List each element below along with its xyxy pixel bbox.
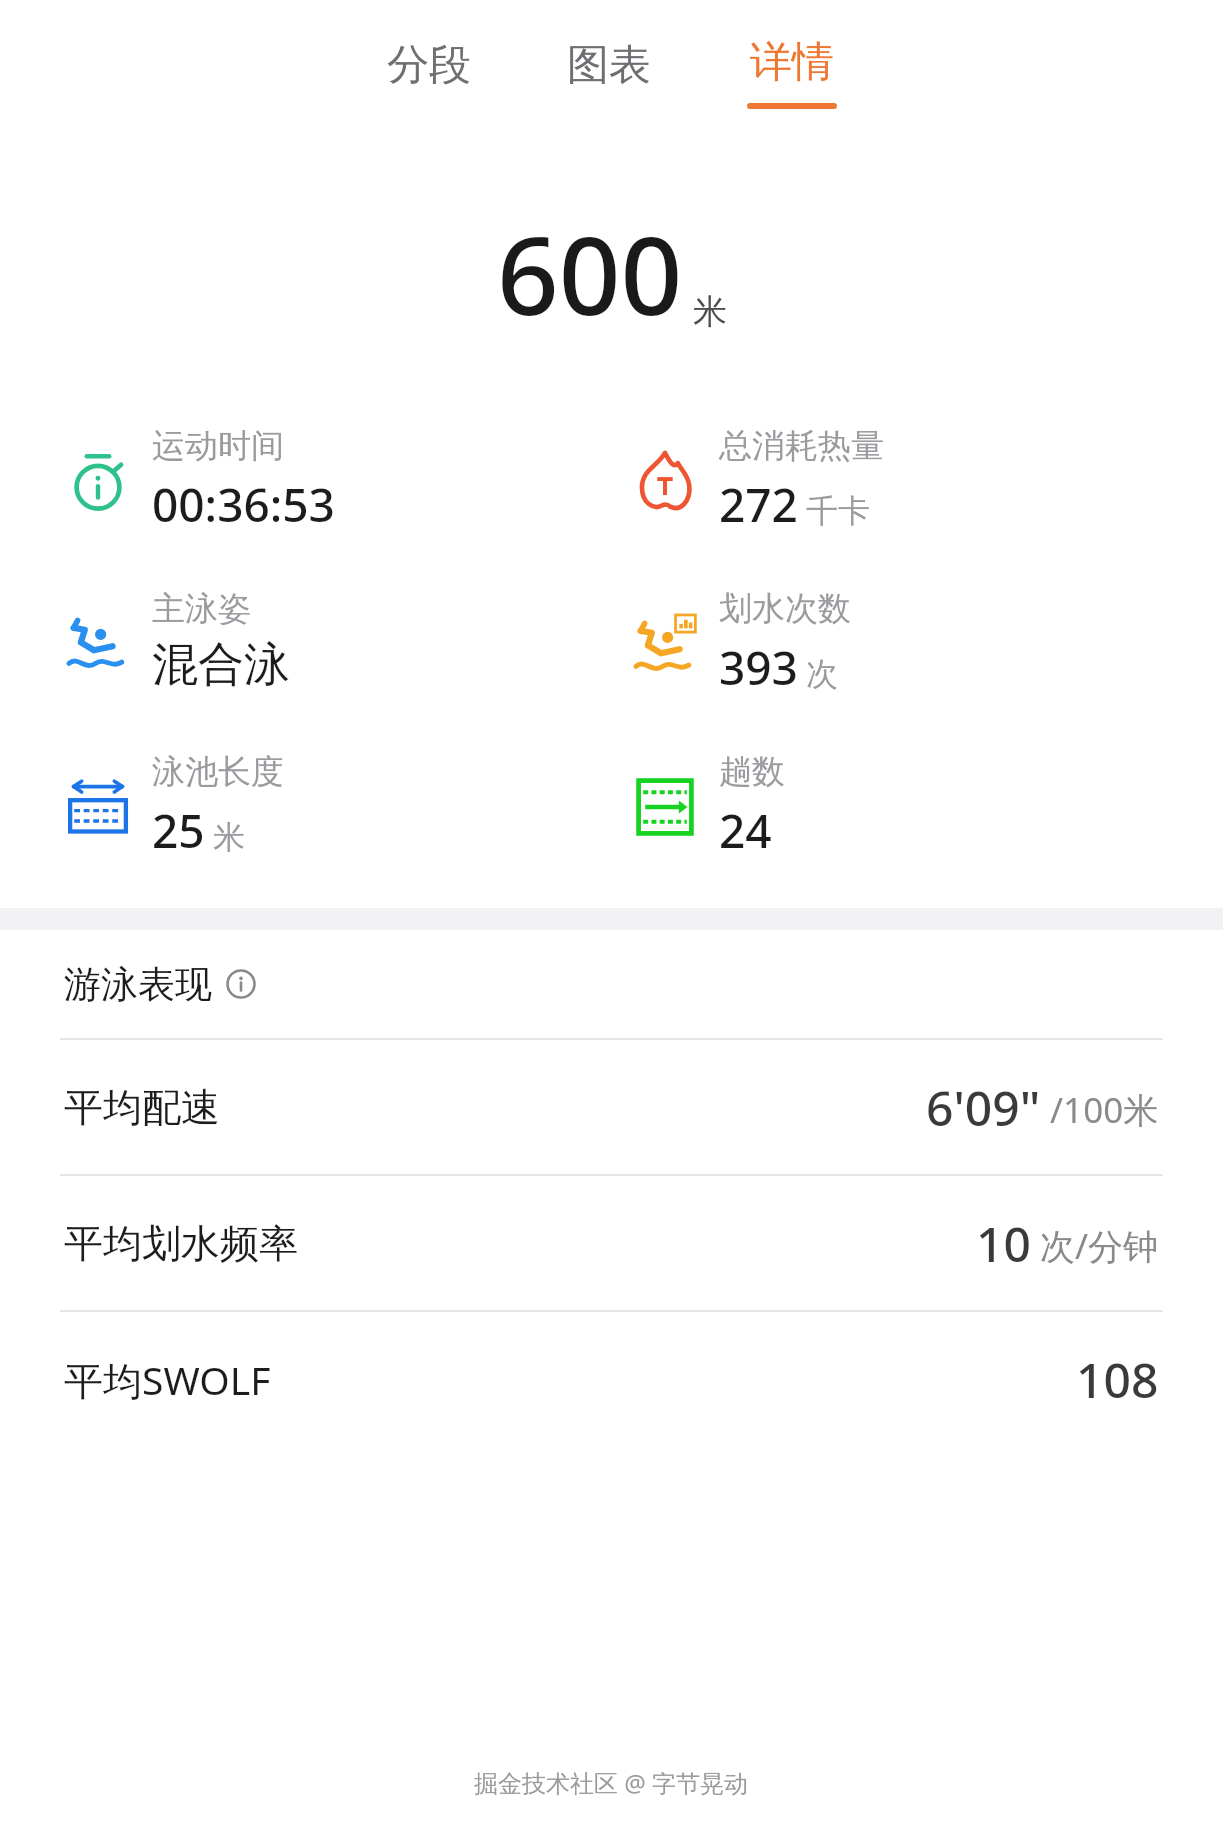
staticText: 泳池长度 — [152, 751, 284, 793]
staticText: 次/分钟 — [1031, 1222, 1159, 1270]
staticText: 详情 — [750, 36, 834, 89]
staticText: 次 — [806, 654, 838, 694]
staticText: 272 — [719, 473, 798, 536]
staticText: 600 — [497, 200, 683, 347]
staticText: 平均SWOLF — [64, 1353, 271, 1406]
staticText: 游泳表现 — [64, 961, 212, 1008]
staticText: 掘金技术社区 @ 字节晃动 — [474, 1766, 749, 1799]
staticText: 平均配速 — [64, 1083, 220, 1132]
staticText: 10 — [976, 1211, 1031, 1276]
button[interactable]: 平均SWOLF — [0, 1312, 1223, 1446]
staticText: 总消耗热量 — [719, 425, 884, 467]
button[interactable]: 划水次数 — [627, 588, 851, 699]
button[interactable]: Info — [226, 969, 256, 999]
staticText: 趟数 — [719, 751, 785, 793]
staticText: 00:36:53 — [152, 473, 335, 536]
staticText: 图表 — [567, 39, 651, 92]
staticText: 划水次数 — [719, 588, 851, 630]
staticText: 运动时间 — [152, 425, 284, 467]
staticText: 25 — [152, 799, 205, 862]
button[interactable]: 详情 — [729, 28, 855, 117]
staticText: 米 — [693, 290, 727, 333]
button[interactable]: 泳池长度 — [60, 751, 284, 862]
staticText: 393 — [719, 636, 798, 699]
button[interactable]: 平均划水频率 — [0, 1176, 1223, 1310]
staticText: 主泳姿 — [152, 588, 251, 630]
staticText: 千卡 — [806, 491, 870, 531]
staticText: 108 — [1076, 1347, 1159, 1412]
staticText: 分段 — [387, 39, 471, 92]
staticText: 平均划水频率 — [64, 1219, 298, 1268]
button[interactable]: 运动时间 — [60, 425, 335, 536]
button[interactable]: 主泳姿 — [60, 588, 290, 694]
staticText: 24 — [719, 799, 772, 862]
button[interactable]: 趟数 — [627, 751, 785, 862]
button[interactable]: 总消耗热量 — [627, 425, 884, 536]
staticText: /100米 — [1041, 1086, 1159, 1134]
button[interactable]: 平均配速 — [0, 1040, 1223, 1174]
staticText: 米 — [213, 817, 245, 857]
button[interactable]: 图表 — [549, 31, 669, 114]
staticText: 6'09" — [926, 1075, 1041, 1140]
button[interactable]: 分段 — [369, 31, 489, 114]
staticText: 混合泳 — [152, 636, 290, 694]
